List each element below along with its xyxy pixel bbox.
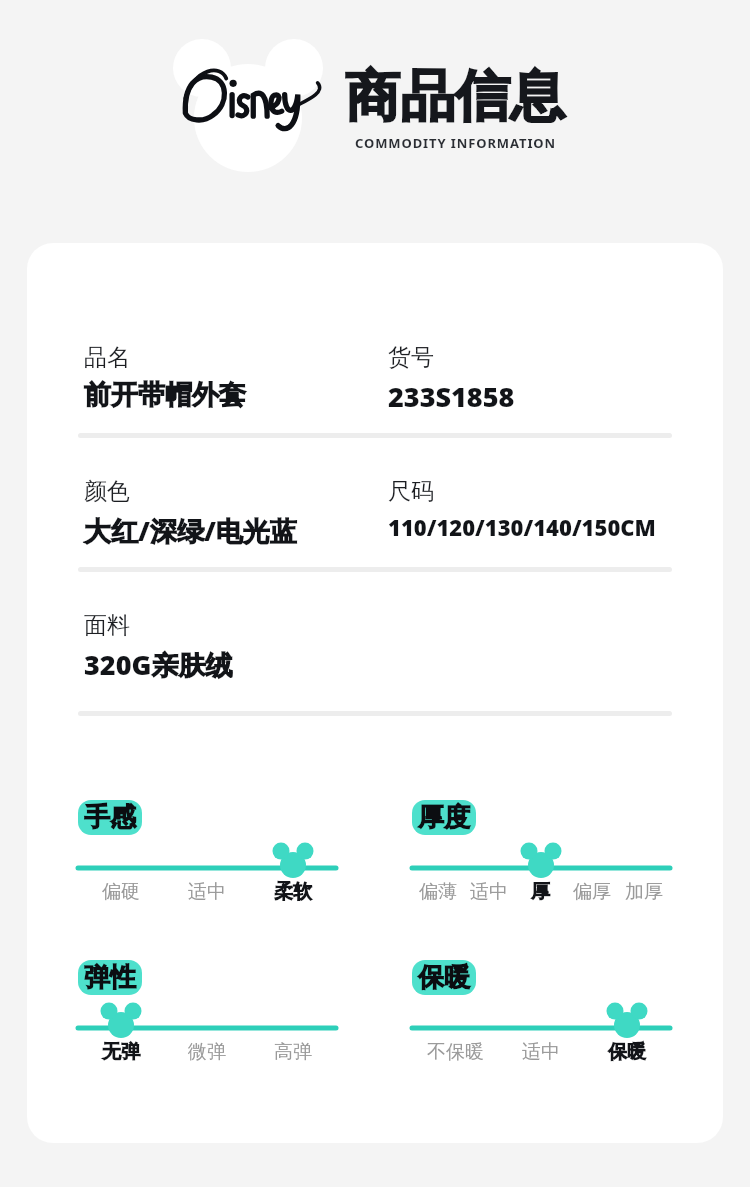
staticText: COMMODITY INFORMATION — [355, 134, 556, 152]
button[interactable]: 面料 — [84, 611, 233, 683]
button[interactable]: 尺码 — [388, 477, 656, 542]
button[interactable]: 颜色 — [84, 477, 297, 549]
staticText: 110/120/130/140/150CM — [388, 512, 656, 542]
staticText: 尺码 — [388, 477, 434, 506]
staticText: 厚度 — [418, 801, 470, 834]
button[interactable]: 厚度 — [412, 800, 670, 904]
staticText: 不保暖 — [427, 1040, 484, 1064]
staticText: 适中 — [188, 880, 226, 904]
staticText: 手感 — [84, 801, 136, 834]
staticText: 弹性 — [84, 961, 136, 994]
other: Disney — [181, 66, 327, 128]
staticText: 颜色 — [84, 477, 130, 506]
button[interactable]: 品名 — [84, 343, 246, 412]
staticText: 货号 — [388, 343, 434, 372]
staticText: 保暖 — [418, 961, 470, 994]
staticText: 适中 — [522, 1040, 560, 1064]
staticText: 商品信息 — [345, 62, 565, 131]
staticText: 偏硬 — [102, 880, 140, 904]
staticText: 保暖 — [608, 1040, 646, 1064]
staticText: 高弹 — [274, 1040, 312, 1064]
button[interactable]: 手感 — [78, 800, 336, 904]
staticText: 偏薄 — [419, 880, 457, 904]
staticText: 无弹 — [102, 1040, 140, 1064]
staticText: 微弹 — [188, 1040, 226, 1064]
staticText: 233S1858 — [388, 378, 515, 415]
staticText: 品名 — [84, 343, 130, 372]
staticText: 320G亲肤绒 — [84, 646, 233, 683]
staticText: 加厚 — [625, 880, 663, 904]
button[interactable]: 货号 — [388, 343, 515, 415]
button[interactable]: 保暖 — [412, 960, 670, 1064]
button[interactable]: 弹性 — [78, 960, 336, 1064]
staticText: 前开带帽外套 — [84, 378, 246, 412]
staticText: 适中 — [470, 880, 508, 904]
staticText: 面料 — [84, 611, 130, 640]
staticText: 偏厚 — [573, 880, 611, 904]
staticText: 大红/深绿/电光蓝 — [84, 512, 297, 549]
staticText: 柔软 — [274, 880, 312, 904]
staticText: 厚 — [531, 880, 550, 904]
